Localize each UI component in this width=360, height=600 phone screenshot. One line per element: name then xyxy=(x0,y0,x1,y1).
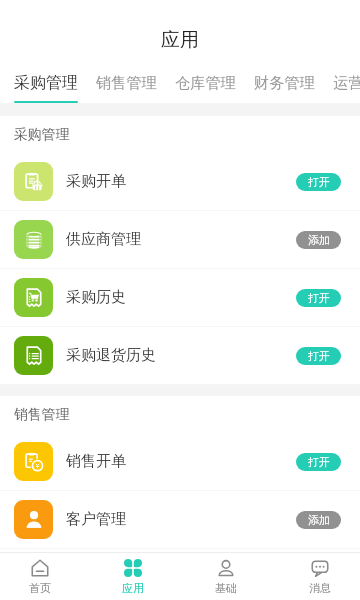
staticText: 销售开单 xyxy=(66,452,126,471)
button[interactable]: 销售开单 xyxy=(0,433,360,490)
other: 基础 xyxy=(217,559,235,577)
button[interactable]: 打开 xyxy=(296,453,341,471)
staticText: 采购管理 xyxy=(14,73,78,93)
staticText: 供应商管理 xyxy=(66,230,141,249)
button[interactable]: 打开 xyxy=(296,289,341,307)
staticText: 财务管理 xyxy=(254,73,315,92)
staticText: 客户管理 xyxy=(66,510,126,529)
staticText: 打开 xyxy=(308,175,330,189)
button[interactable]: 采购管理 xyxy=(14,60,78,103)
staticText: 应用 xyxy=(161,28,199,52)
staticText: 打开 xyxy=(308,455,330,469)
button[interactable]: 采购退货历史 xyxy=(0,327,360,384)
button[interactable]: 客户管理 xyxy=(0,491,360,548)
button[interactable]: 财务管理 xyxy=(254,60,315,103)
other: 消息 xyxy=(311,559,329,577)
staticText: 销售管理 xyxy=(14,406,70,423)
button[interactable]: 首页 xyxy=(0,553,86,600)
other: 应用 xyxy=(124,559,142,577)
staticText: 采购开单 xyxy=(66,172,126,191)
button[interactable]: 基础 xyxy=(179,553,273,600)
button[interactable]: 打开 xyxy=(296,173,341,191)
button[interactable]: 应用 xyxy=(86,553,179,600)
staticText: 采购历史 xyxy=(66,288,126,307)
button[interactable]: 运营管理 xyxy=(333,60,360,103)
button[interactable]: 添加 xyxy=(296,511,341,529)
staticText: 添加 xyxy=(308,513,330,527)
staticText: 仓库管理 xyxy=(175,73,236,92)
staticText: 打开 xyxy=(308,349,330,363)
button[interactable]: 采购开单 xyxy=(0,153,360,210)
staticText: 基础 xyxy=(215,581,237,595)
staticText: 消息 xyxy=(309,581,331,595)
staticText: 采购管理 xyxy=(14,126,70,143)
staticText: 运营管理 xyxy=(333,73,360,92)
button[interactable]: 添加 xyxy=(296,231,341,249)
staticText: 添加 xyxy=(308,233,330,247)
button[interactable]: 仓库管理 xyxy=(175,60,236,103)
staticText: 销售管理 xyxy=(96,73,157,92)
staticText: 首页 xyxy=(29,581,51,595)
staticText: 应用 xyxy=(122,581,144,595)
other: 首页 xyxy=(31,559,49,577)
button[interactable]: 采购历史 xyxy=(0,269,360,326)
button[interactable]: 消息 xyxy=(273,553,360,600)
staticText: 打开 xyxy=(308,291,330,305)
button[interactable]: 销售管理 xyxy=(96,60,157,103)
button[interactable]: 供应商管理 xyxy=(0,211,360,268)
button[interactable]: 打开 xyxy=(296,347,341,365)
staticText: 采购退货历史 xyxy=(66,346,156,365)
